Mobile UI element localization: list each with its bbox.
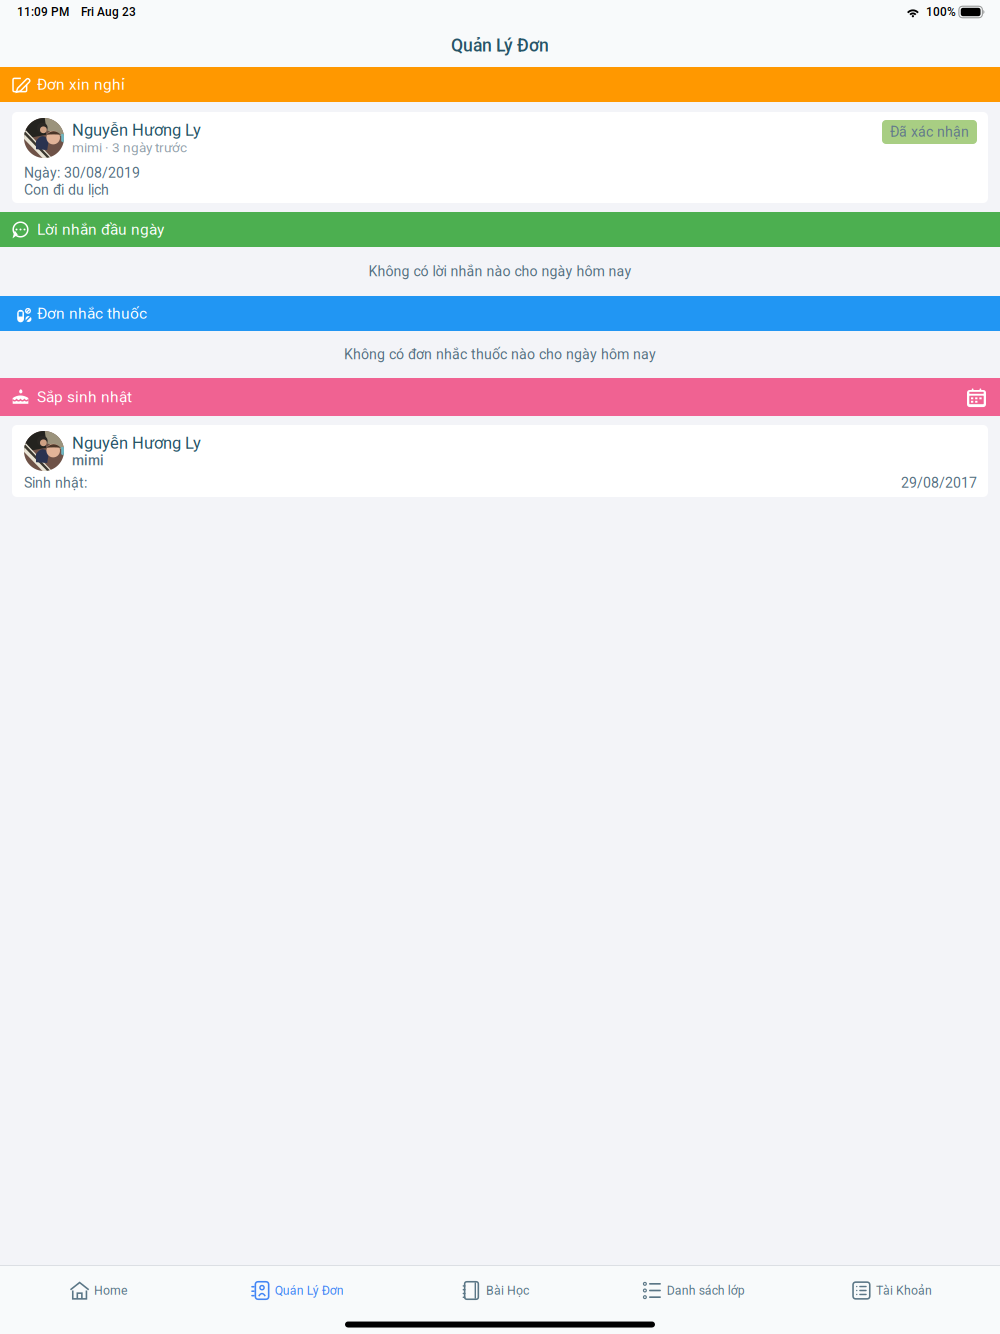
staticText: Sinh nhật: bbox=[24, 475, 87, 491]
staticText: Đơn xin nghỉ bbox=[37, 75, 125, 93]
staticText: Con đi du lịch bbox=[24, 182, 109, 198]
staticText: Đã xác nhận bbox=[890, 124, 969, 140]
staticText: Không có lời nhắn nào cho ngày hôm nay bbox=[368, 263, 631, 280]
staticText: mimi bbox=[72, 452, 104, 469]
staticText: 100% bbox=[920, 5, 959, 19]
staticText: Fri Aug 23 bbox=[69, 5, 136, 19]
button[interactable]: Danh sách lớp bbox=[595, 1266, 793, 1315]
button[interactable]: Home bbox=[0, 1266, 198, 1315]
staticText: Nguyễn Hương Ly bbox=[72, 120, 201, 140]
staticText: Ngày: 30/08/2019 bbox=[24, 165, 140, 181]
staticText: mimi · 3 ngày trước bbox=[72, 139, 187, 155]
button[interactable]: Chọn ngày bbox=[964, 378, 989, 415]
button[interactable]: Đã xác nhận bbox=[882, 118, 977, 144]
staticText: Nguyễn Hương Ly bbox=[72, 433, 201, 453]
staticText: Quản Lý Đơn bbox=[275, 1283, 344, 1298]
staticText: Danh sách lớp bbox=[667, 1283, 745, 1298]
staticText: Sắp sinh nhật bbox=[37, 388, 132, 406]
staticText: Đơn nhắc thuốc bbox=[37, 304, 147, 322]
button[interactable]: Tài Khoản bbox=[793, 1266, 991, 1315]
button[interactable]: Quản Lý Đơn bbox=[198, 1266, 396, 1315]
staticText: Tài Khoản bbox=[876, 1283, 932, 1298]
staticText: Không có đơn nhắc thuốc nào cho ngày hôm… bbox=[344, 346, 656, 363]
staticText: Quản Lý Đơn bbox=[451, 35, 549, 56]
button[interactable]: Bài Học bbox=[396, 1266, 595, 1315]
staticText: 29/08/2017 bbox=[901, 475, 977, 491]
staticText: Bài Học bbox=[486, 1283, 529, 1298]
staticText: Lời nhắn đầu ngày bbox=[37, 220, 164, 238]
staticText: Home bbox=[94, 1283, 128, 1298]
staticText: 11:09 PM bbox=[17, 5, 69, 19]
